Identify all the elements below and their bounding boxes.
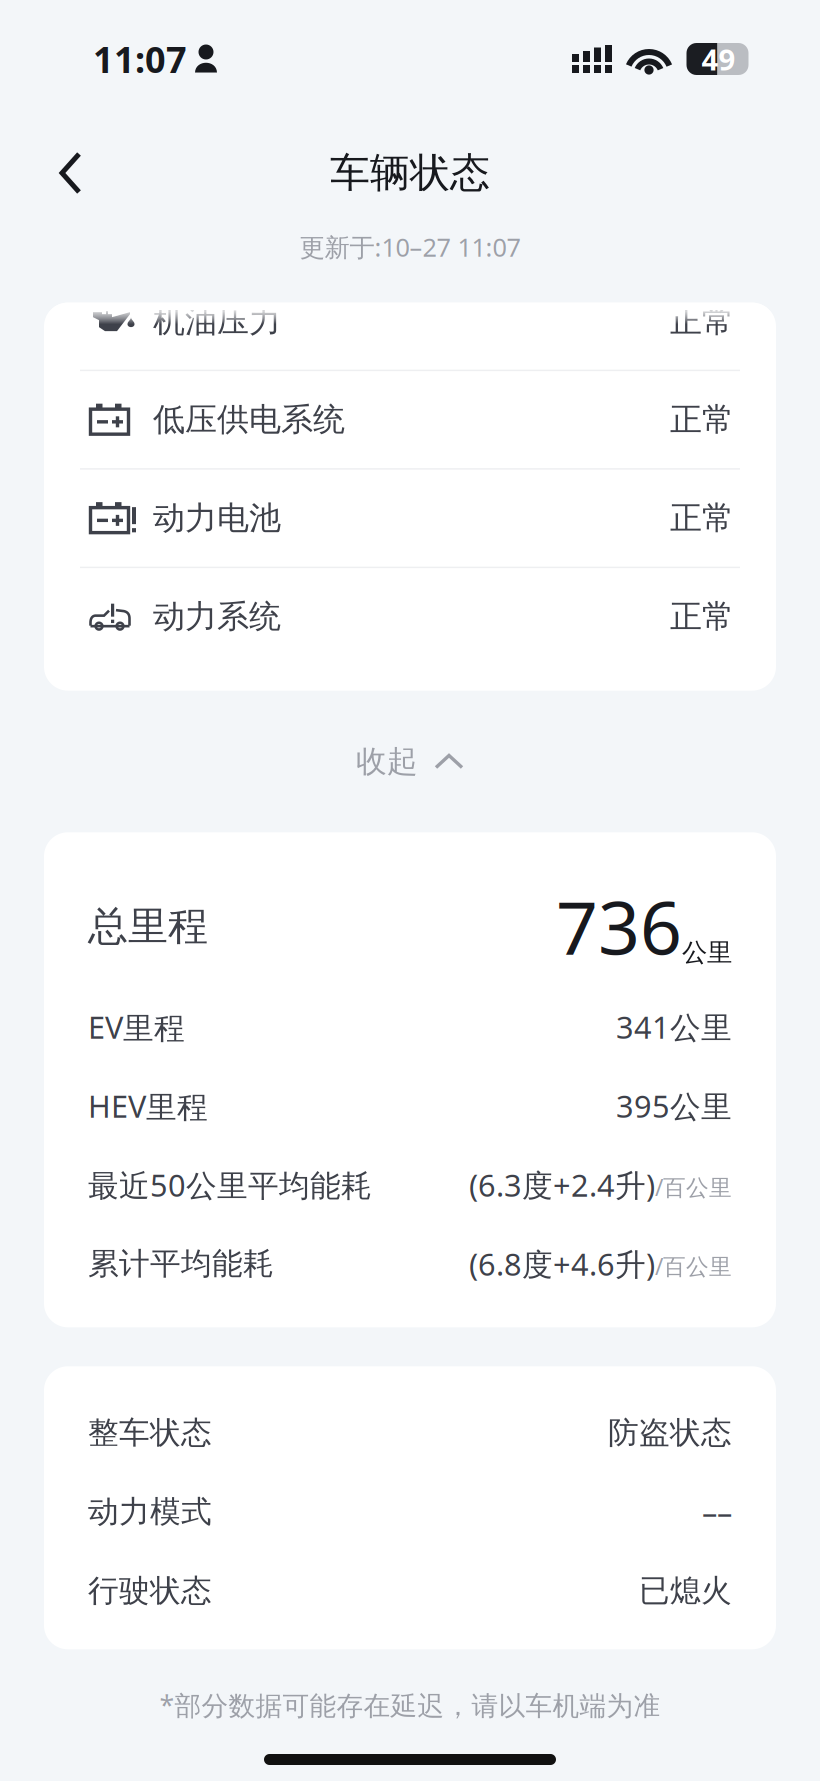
- staticText: (6.8度+4.6升): [469, 1243, 655, 1284]
- staticText: ––: [702, 1491, 732, 1532]
- staticText: 最近50公里平均能耗: [88, 1164, 372, 1205]
- staticText: /百公里: [655, 1172, 732, 1202]
- staticText: 公里: [682, 937, 732, 968]
- staticText: (6.3度+2.4升): [469, 1164, 655, 1205]
- staticText: 车辆状态: [330, 148, 490, 197]
- staticText: 动力电池: [153, 498, 281, 538]
- staticText: *部分数据可能存在延迟，请以车机端为准: [159, 1687, 660, 1723]
- staticText: 正常: [670, 400, 734, 439]
- button[interactable]: 收起: [326, 691, 494, 832]
- staticText: 更新于:10–27 11:07: [299, 230, 520, 264]
- staticText: 总里程: [88, 902, 208, 951]
- staticText: HEV里程: [88, 1085, 208, 1126]
- staticText: 机油压力: [153, 301, 281, 341]
- button[interactable]: 返回: [0, 137, 110, 209]
- staticText: 正常: [670, 597, 734, 636]
- staticText: 低压供电系统: [153, 400, 345, 439]
- staticText: 累计平均能耗: [88, 1245, 274, 1283]
- staticText: 11:07: [93, 35, 187, 83]
- staticText: EV里程: [88, 1006, 185, 1047]
- staticText: 正常: [670, 301, 734, 341]
- staticText: 49: [701, 39, 735, 78]
- staticText: /百公里: [655, 1251, 732, 1281]
- staticText: 行驶状态: [88, 1572, 212, 1610]
- staticText: 收起: [356, 743, 418, 780]
- staticText: 防盗状态: [608, 1414, 732, 1452]
- staticText: 736: [556, 878, 682, 975]
- staticText: 395公里: [616, 1085, 732, 1126]
- staticText: 动力模式: [88, 1493, 212, 1531]
- staticText: 动力系统: [153, 597, 281, 636]
- staticText: 341公里: [616, 1006, 732, 1047]
- staticText: 正常: [670, 498, 734, 538]
- staticText: 整车状态: [88, 1414, 212, 1452]
- staticText: 已熄火: [639, 1572, 732, 1610]
